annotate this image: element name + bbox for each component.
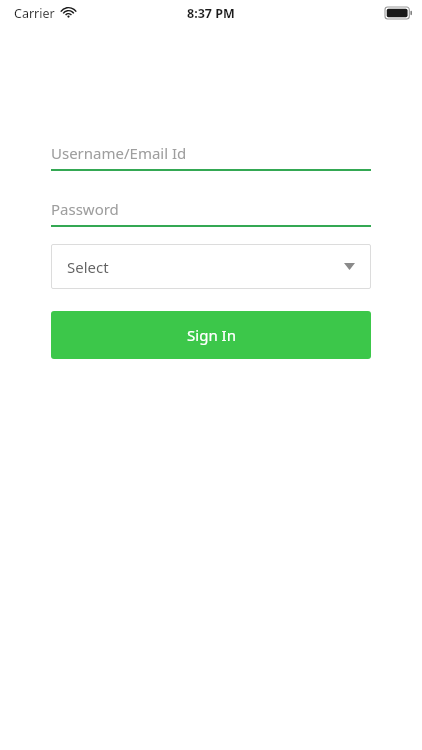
button[interactable]: Username/Email Id [51,137,371,169]
button[interactable]: Password [51,193,371,225]
other: Open dropdown [344,263,355,270]
button[interactable]: Select [51,244,371,289]
staticText: Carrier [14,5,55,22]
button[interactable]: Sign In [51,311,371,359]
staticText: Select [67,257,109,277]
staticText: 8:37 PM [187,5,235,22]
staticText: Username/Email Id [51,143,187,163]
staticText: Password [51,199,119,219]
staticText: Sign In [187,325,236,345]
